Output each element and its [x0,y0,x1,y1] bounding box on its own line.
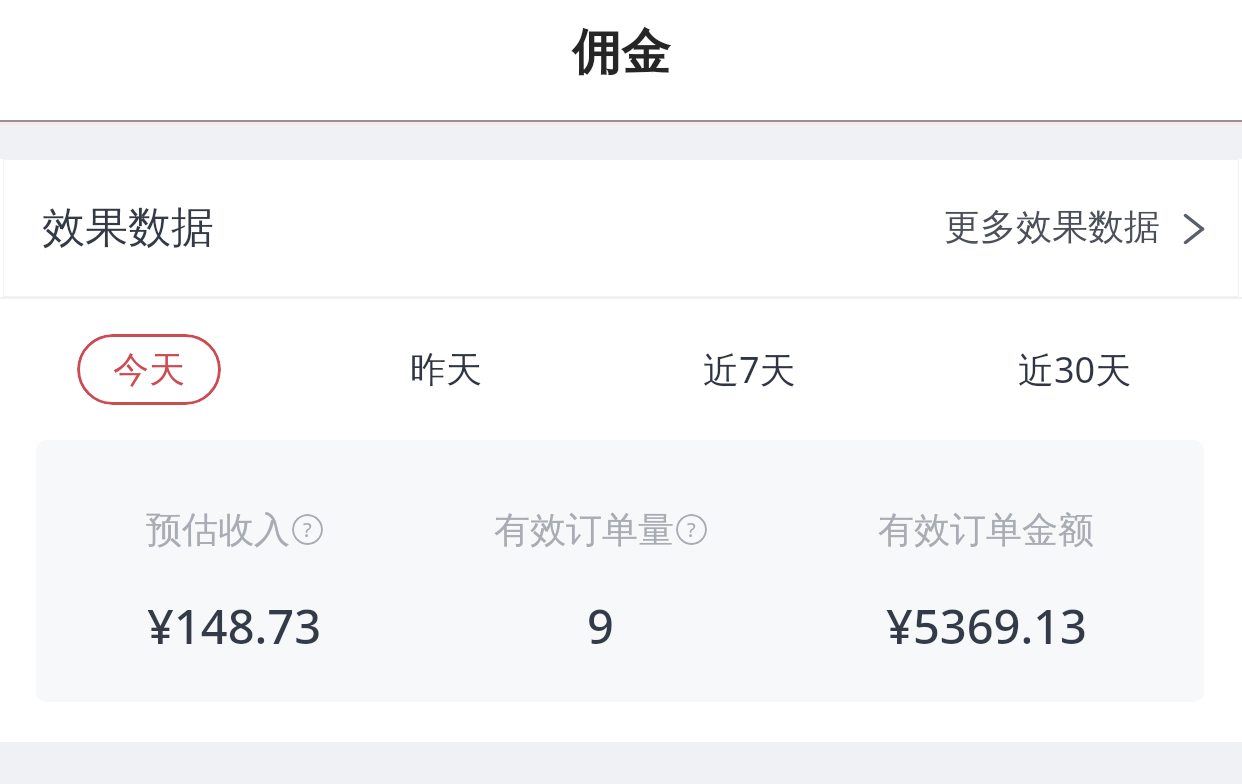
button[interactable]: 近7天 [670,327,829,412]
staticText: 更多效果数据 [944,204,1160,249]
staticText: 昨天 [410,347,482,392]
staticText: ? [303,516,312,543]
staticText: ¥148.73 [147,594,322,658]
staticText: 9 [587,594,614,658]
staticText: 近7天 [703,345,796,394]
staticText: 效果数据 [42,201,214,255]
staticText: 有效订单量 [494,507,674,552]
button[interactable]: 更多效果数据 [944,206,1204,251]
staticText: 有效订单金额 [878,507,1094,552]
staticText: 预估收入 [146,507,290,552]
button[interactable]: 昨天 [377,329,515,410]
button[interactable]: 今天 [77,334,221,405]
staticText: ¥5369.13 [886,594,1087,658]
button[interactable]: 有效订单量 说明 [676,514,707,545]
button[interactable]: 近30天 [985,327,1165,412]
staticText: 近30天 [1018,345,1132,394]
staticText: 佣金 [572,22,670,84]
staticText: ? [687,516,696,543]
staticText: 今天 [113,347,185,392]
button[interactable]: 预估收入 说明 [292,514,323,545]
